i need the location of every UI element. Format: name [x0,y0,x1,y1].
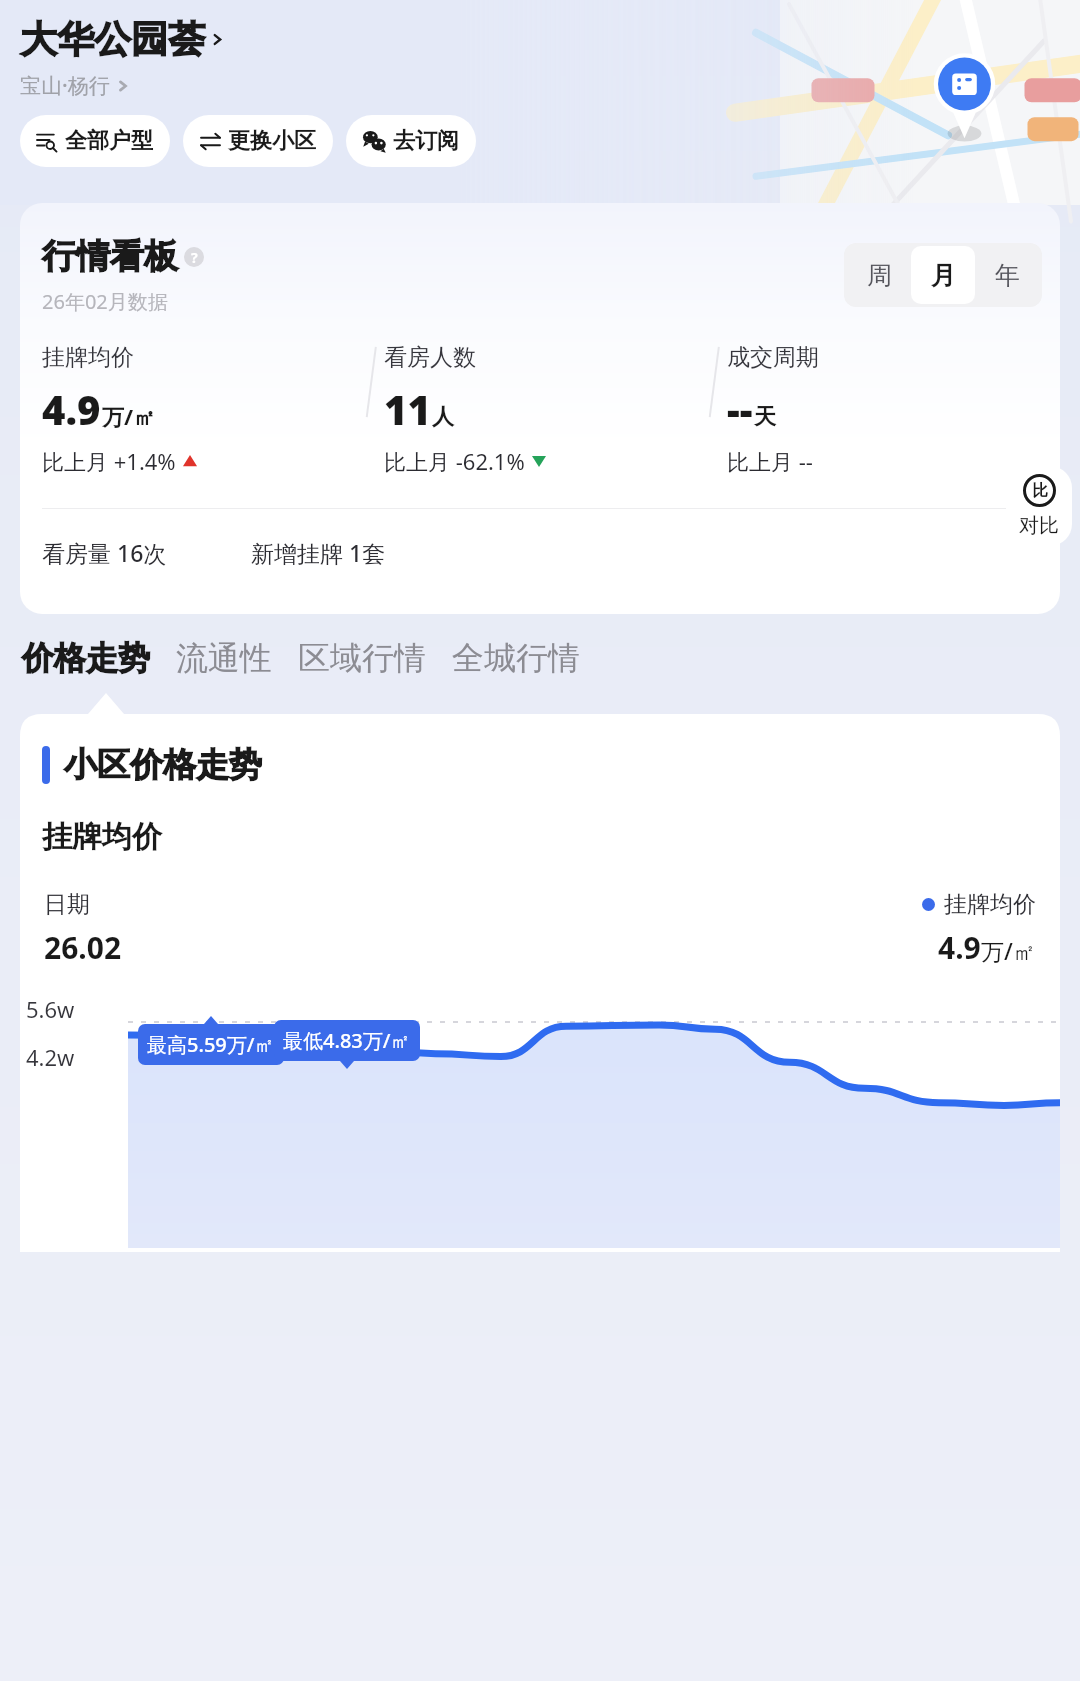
staticText: 看房人数 [384,343,476,372]
staticText: 挂牌均价 [42,818,162,856]
other: 说明 [184,247,204,267]
staticText: 比上月 +1.4% [42,446,176,476]
staticText: 流通性 [176,638,272,678]
staticText: -- [727,382,753,436]
staticText: 万/㎡ [981,935,1036,966]
staticText: 挂牌均价 [42,343,134,372]
button[interactable]: 更换小区 [183,115,333,167]
staticText: 成交周期 [727,343,819,372]
staticText: 周 [867,260,892,291]
staticText: 日期 [44,890,90,919]
button[interactable]: 价格走势 [22,634,150,682]
staticText: 26.02 [44,927,122,968]
button[interactable]: 区域行情 [298,634,426,682]
staticText: 更换小区 [228,127,316,155]
staticText: 月 [931,260,956,291]
button[interactable]: 大华公园荟 [20,16,226,63]
button[interactable]: 行情看板 [42,235,204,278]
staticText: 比上月 -62.1% [384,446,525,476]
button[interactable]: 流通性 [176,634,272,682]
staticText: 区域行情 [298,638,426,678]
staticText: 行情看板 [42,235,178,278]
button[interactable]: 去订阅 [346,115,476,167]
staticText: 大华公园荟 [20,16,205,63]
staticText: 年 [995,260,1020,291]
button[interactable]: 周 [847,246,911,304]
staticText: 4.9 [938,927,981,968]
button[interactable]: 比 [1006,466,1072,546]
staticText: 4.2w [26,1042,75,1072]
staticText: 万/㎡ [102,401,156,431]
button[interactable]: 全城行情 [452,634,580,682]
button[interactable]: 全部户型 [20,115,170,167]
staticText: 新增挂牌 1套 [251,537,386,568]
staticText: 26年02月数据 [42,288,168,315]
staticText: 宝山·杨行 [20,71,110,100]
staticText: 对比 [1019,513,1059,538]
staticText: 全城行情 [452,638,580,678]
staticText: 看房量 16次 [42,537,167,568]
button[interactable]: 年 [975,246,1039,304]
staticText: 全部户型 [65,127,153,155]
staticText: 4.9 [42,382,101,436]
staticText: 挂牌均价 [944,890,1036,919]
button[interactable]: 月 [911,246,975,304]
staticText: 比上月 -- [727,446,813,476]
staticText: 5.6w [26,994,75,1024]
staticText: ? [191,248,198,267]
staticText: 去订阅 [393,127,459,155]
staticText: 11 [384,382,431,436]
staticText: 比 [1032,481,1048,501]
button[interactable]: 宝山·杨行 [20,71,131,100]
staticText: 最低4.83万/㎡ [283,1027,411,1054]
staticText: 最高5.59万/㎡ [147,1031,275,1058]
staticText: 小区价格走势 [64,744,262,786]
staticText: 人 [432,403,454,431]
staticText: 天 [754,403,776,431]
staticText: 价格走势 [22,638,150,678]
